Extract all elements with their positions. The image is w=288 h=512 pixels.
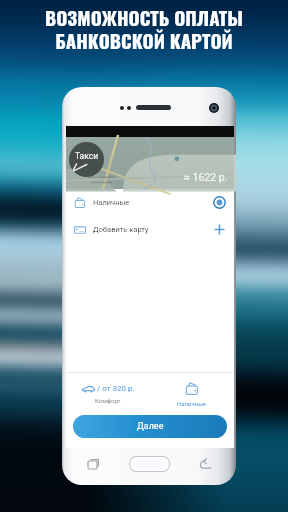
other: Add card: [213, 223, 226, 236]
button[interactable]: / от 320 р.: [66, 373, 150, 415]
staticText: Далее: [137, 421, 164, 432]
button[interactable]: Добавить карту: [66, 216, 234, 243]
staticText: ВОЗМОЖНОСТЬ ОПЛАТЫ: [45, 3, 243, 31]
staticText: Наличные: [177, 400, 207, 407]
other: Selected: [213, 196, 226, 209]
button[interactable]: Далее: [73, 415, 227, 438]
button[interactable]: Наличные: [66, 189, 234, 216]
staticText: Добавить карту: [93, 225, 149, 234]
staticText: Такси: [75, 151, 99, 161]
button[interactable]: Наличные: [150, 373, 234, 415]
button[interactable]: Home: [129, 456, 170, 472]
button[interactable]: Back: [196, 455, 214, 473]
staticText: ≈ 1622 р.: [184, 171, 228, 183]
staticText: Наличные: [93, 198, 130, 207]
staticText: Комфорт: [95, 397, 121, 404]
button[interactable]: Recents: [84, 455, 102, 473]
staticText: / от 320 р.: [97, 384, 135, 393]
staticText: БАНКОВСКОЙ КАРТОЙ: [55, 26, 233, 54]
